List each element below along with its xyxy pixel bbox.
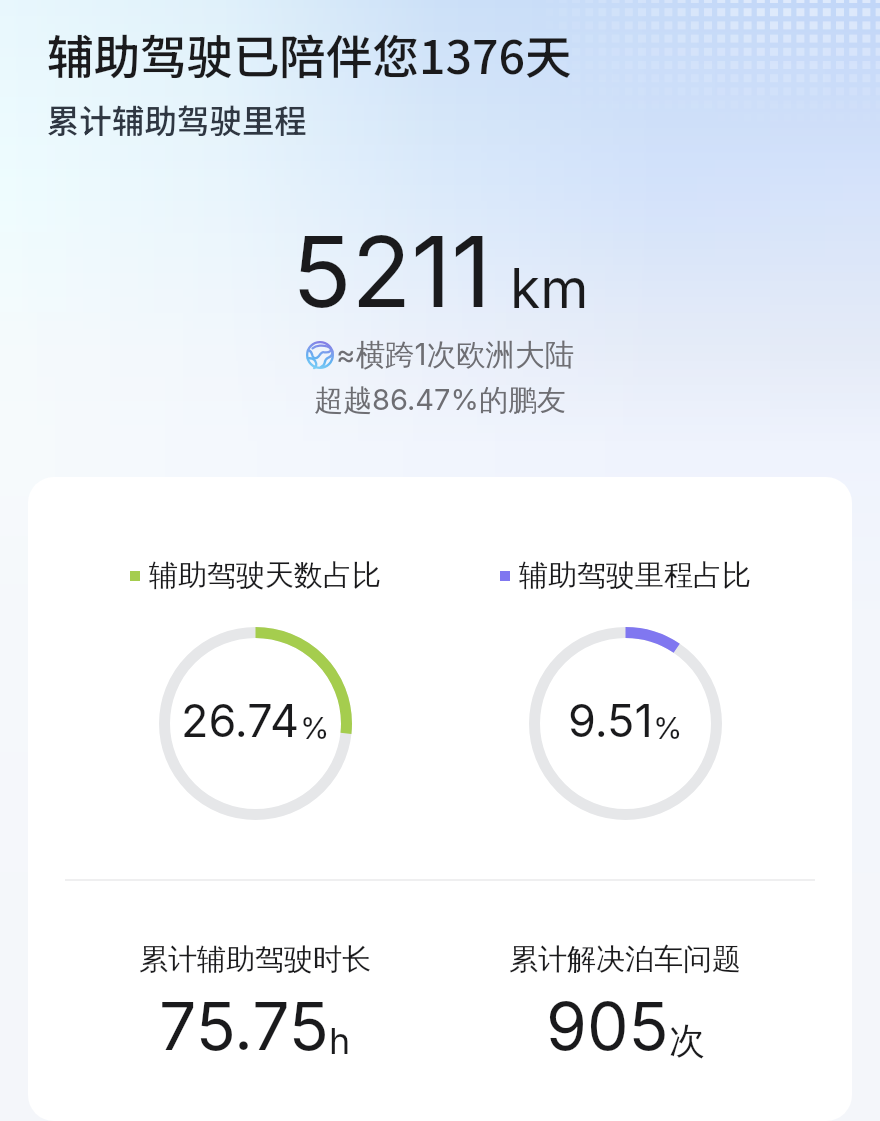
staticText: % [653, 710, 683, 746]
staticText: % [300, 710, 330, 746]
staticText: 75.75 [159, 986, 329, 1066]
button[interactable]: 辅助驾驶天数占比 [70, 557, 440, 820]
staticText: 辅助驾驶已陪伴您1376天 [47, 20, 572, 87]
staticText: 辅助驾驶里程占比 [519, 557, 751, 594]
staticText: 5211 [292, 212, 492, 331]
staticText: 次 [669, 1018, 705, 1063]
staticText: 累计辅助驾驶里程 [47, 95, 308, 142]
staticText: 累计解决泊车问题 [509, 941, 741, 978]
staticText: 超越86.47%的鹏友 [0, 382, 880, 419]
staticText: 9.51 [568, 693, 653, 747]
staticText: km [510, 255, 589, 322]
button[interactable]: 辅助驾驶里程占比 [440, 557, 810, 820]
button[interactable]: 累计解决泊车问题 [440, 941, 810, 1066]
button[interactable]: 累计辅助驾驶时长 [70, 941, 440, 1066]
staticText: h [329, 1019, 351, 1063]
staticText: 26.74 [181, 693, 300, 747]
staticText: ≈横跨1次欧洲大陆 [336, 336, 575, 373]
staticText: 累计辅助驾驶时长 [139, 941, 371, 978]
staticText: 辅助驾驶天数占比 [149, 557, 381, 594]
staticText: 905 [546, 986, 669, 1066]
other: Globe [306, 341, 334, 369]
